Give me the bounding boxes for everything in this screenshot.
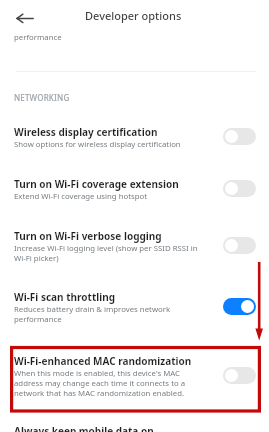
button[interactable]: Toggle on bbox=[223, 298, 256, 315]
button[interactable]: Back bbox=[10, 9, 28, 27]
staticText: When this mode is enabled, this device's… bbox=[14, 368, 186, 398]
staticText: Turn on Wi-Fi coverage extension bbox=[14, 177, 179, 191]
button[interactable]: Wi-Fi-enhanced MAC randomization bbox=[0, 324, 269, 398]
staticText: Developer options bbox=[85, 8, 182, 23]
button[interactable]: Always keep mobile data on bbox=[0, 398, 269, 432]
staticText: Reduces battery drain & improves network… bbox=[14, 304, 171, 324]
staticText: Turn on Wi-Fi verbose logging bbox=[14, 229, 162, 243]
button[interactable]: Toggle off bbox=[223, 180, 256, 197]
staticText: Wi-Fi-enhanced MAC randomization bbox=[14, 354, 192, 368]
button[interactable]: Turn on Wi-Fi verbose logging bbox=[0, 202, 269, 263]
staticText: performance bbox=[14, 32, 62, 43]
staticText: Always keep mobile data on bbox=[14, 424, 154, 432]
staticText: Extend Wi-Fi coverage using hotspot bbox=[14, 191, 148, 202]
button[interactable]: Toggle off bbox=[223, 128, 256, 145]
staticText: Show options for wireless display certif… bbox=[14, 139, 181, 150]
staticText: Wireless display certification bbox=[14, 125, 158, 139]
button[interactable]: Wi-Fi scan throttling bbox=[0, 263, 269, 324]
button[interactable]: Toggle off bbox=[223, 237, 256, 254]
button[interactable]: Wireless display certification bbox=[0, 105, 269, 150]
staticText: NETWORKING bbox=[14, 92, 70, 103]
staticText: Increase Wi-Fi logging level (show per S… bbox=[14, 243, 198, 263]
button[interactable]: Turn on Wi-Fi coverage extension bbox=[0, 150, 269, 202]
button[interactable]: Toggle off bbox=[223, 367, 256, 384]
staticText: Wi-Fi scan throttling bbox=[14, 290, 116, 304]
